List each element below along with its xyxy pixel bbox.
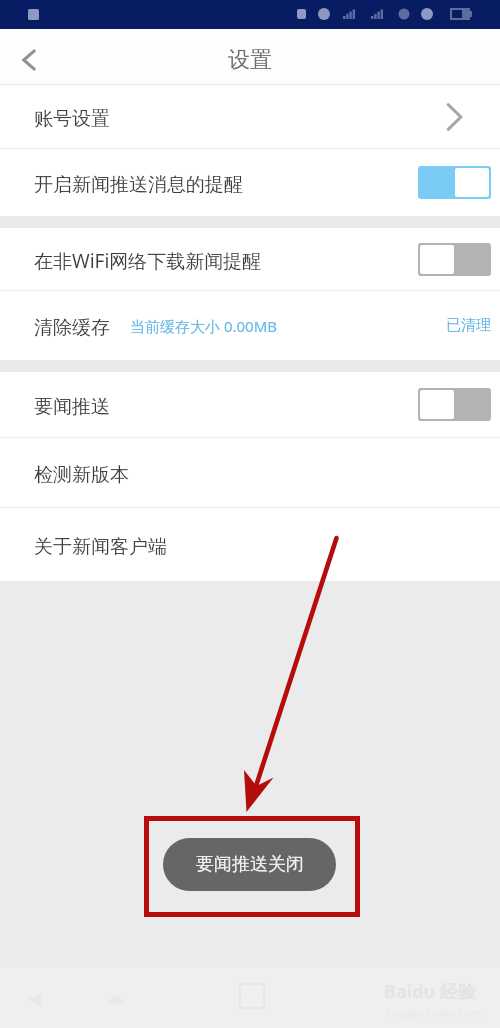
staticText: 要闻推送关闭 <box>196 853 304 876</box>
button[interactable]: Switch off <box>418 388 491 421</box>
staticText: 清除缓存 <box>34 316 110 340</box>
button[interactable]: 检测新版本 <box>0 438 500 507</box>
staticText: 当前缓存大小 0.00MB <box>130 316 278 336</box>
button[interactable]: 在非WiFi网络下载新闻提醒 <box>0 228 500 290</box>
button[interactable]: 账号设置 <box>0 85 500 148</box>
staticText: 关于新闻客户端 <box>34 535 167 559</box>
staticText: Baidu 经验 <box>384 979 476 1004</box>
staticText: 在非WiFi网络下载新闻提醒 <box>34 248 262 274</box>
staticText: 要闻推送 <box>34 395 110 419</box>
staticText: 已清理 <box>446 316 491 335</box>
staticText: 检测新版本 <box>34 463 129 487</box>
staticText: 开启新闻推送消息的提醒 <box>34 173 243 197</box>
button[interactable]: Switch on <box>418 166 491 199</box>
button[interactable]: 开启新闻推送消息的提醒 <box>0 149 500 216</box>
staticText: 账号设置 <box>34 107 110 131</box>
button[interactable]: Switch off <box>418 243 491 276</box>
button[interactable]: 要闻推送 <box>0 372 500 437</box>
staticText: 设置 <box>228 46 272 74</box>
button[interactable]: 要闻推送关闭 <box>163 838 336 891</box>
button[interactable]: 关于新闻客户端 <box>0 508 500 581</box>
button[interactable]: Back <box>6 37 52 83</box>
button[interactable]: 清除缓存 <box>0 291 500 360</box>
